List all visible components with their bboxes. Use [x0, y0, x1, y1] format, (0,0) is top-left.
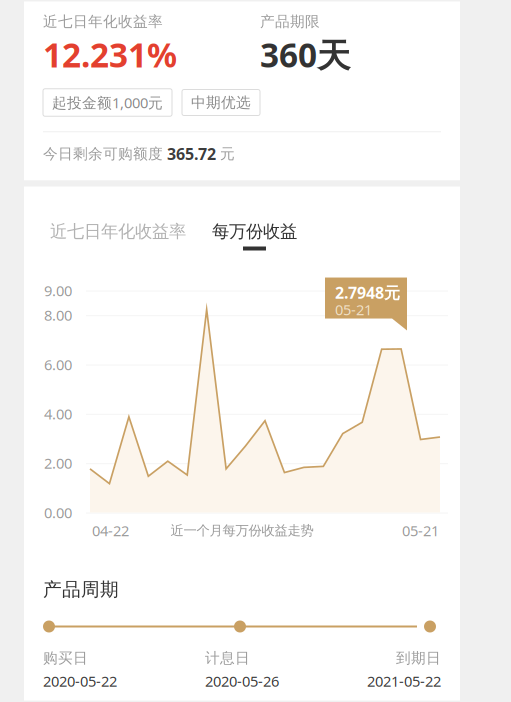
staticText: 2021-05-22 — [367, 671, 441, 691]
staticText: 9.00 — [44, 281, 72, 300]
staticText: 360天 — [260, 32, 350, 77]
staticText: 4.00 — [44, 404, 72, 424]
staticText: 05-21 — [335, 300, 372, 319]
button[interactable]: 每万份收益 — [212, 221, 298, 252]
staticText: 今日剩余可购额度 — [43, 145, 167, 163]
staticText: 到期日 — [396, 649, 441, 667]
staticText: 365.72 — [167, 143, 216, 164]
staticText: 2020-05-26 — [205, 671, 279, 691]
staticText: 计息日 — [205, 649, 250, 667]
staticText: 近一个月每万份收益走势 — [170, 522, 313, 539]
staticText: 04-22 — [92, 521, 129, 540]
staticText: 2.7948元 — [335, 282, 400, 303]
staticText: 起投金额1,000元 — [52, 93, 163, 112]
staticText: 产品周期 — [43, 578, 119, 601]
staticText: 2.00 — [44, 453, 72, 473]
staticText: 近七日年化收益率 — [43, 12, 163, 30]
staticText: 2020-05-22 — [43, 671, 117, 691]
staticText: 0.00 — [44, 503, 72, 522]
staticText: 元 — [216, 145, 235, 163]
staticText: 近七日年化收益率 — [50, 221, 186, 242]
staticText: 中期优选 — [191, 93, 251, 111]
staticText: 05-21 — [402, 521, 439, 540]
staticText: 8.00 — [44, 305, 72, 325]
staticText: 6.00 — [44, 355, 72, 374]
staticText: 每万份收益 — [212, 221, 297, 242]
staticText: 产品期限 — [260, 12, 320, 30]
staticText: 12.231% — [43, 32, 177, 77]
button[interactable]: 近七日年化收益率 — [50, 221, 195, 241]
staticText: 购买日 — [43, 649, 88, 667]
